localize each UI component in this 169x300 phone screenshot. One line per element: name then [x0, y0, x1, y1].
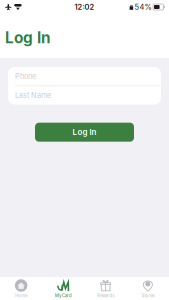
- staticText: 12:02: [74, 2, 94, 11]
- staticText: Log In: [5, 28, 51, 47]
- staticText: My Card: [55, 293, 72, 298]
- staticText: Phone: [15, 72, 36, 81]
- button[interactable]: My Card: [42, 277, 84, 300]
- button[interactable]: Rewards: [84, 277, 127, 300]
- staticText: Stores: [141, 293, 154, 298]
- staticText: Home: [15, 293, 27, 298]
- button[interactable]: Log In: [35, 123, 134, 142]
- staticText: Last Name: [15, 91, 51, 100]
- staticText: Log In: [72, 127, 96, 137]
- staticText: 54%: [135, 2, 152, 11]
- button[interactable]: Stores: [127, 277, 169, 300]
- button[interactable]: Home: [0, 277, 42, 300]
- staticText: Rewards: [97, 293, 114, 298]
